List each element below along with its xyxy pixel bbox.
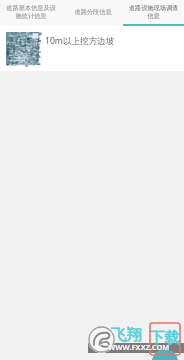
button[interactable]: 道路分段信息 — [62, 0, 123, 26]
staticText: 飞翔 — [111, 325, 142, 345]
staticText: 道路设施现场调查信息 — [128, 4, 179, 20]
button[interactable]: 道路设施现场调查信息 — [123, 0, 184, 26]
button[interactable]: 10m以上挖方边坡 — [0, 26, 184, 71]
button[interactable]: 道路基本信息及设施统计信息 — [0, 0, 62, 26]
staticText: 下载 — [149, 328, 180, 348]
staticText: 道路分段信息 — [74, 8, 112, 16]
staticText: 道路基本信息及设施统计信息 — [5, 4, 57, 20]
staticText: 10m以上挖方边坡 — [45, 35, 115, 47]
staticText: WWW.FXXZ.COM — [108, 342, 170, 352]
